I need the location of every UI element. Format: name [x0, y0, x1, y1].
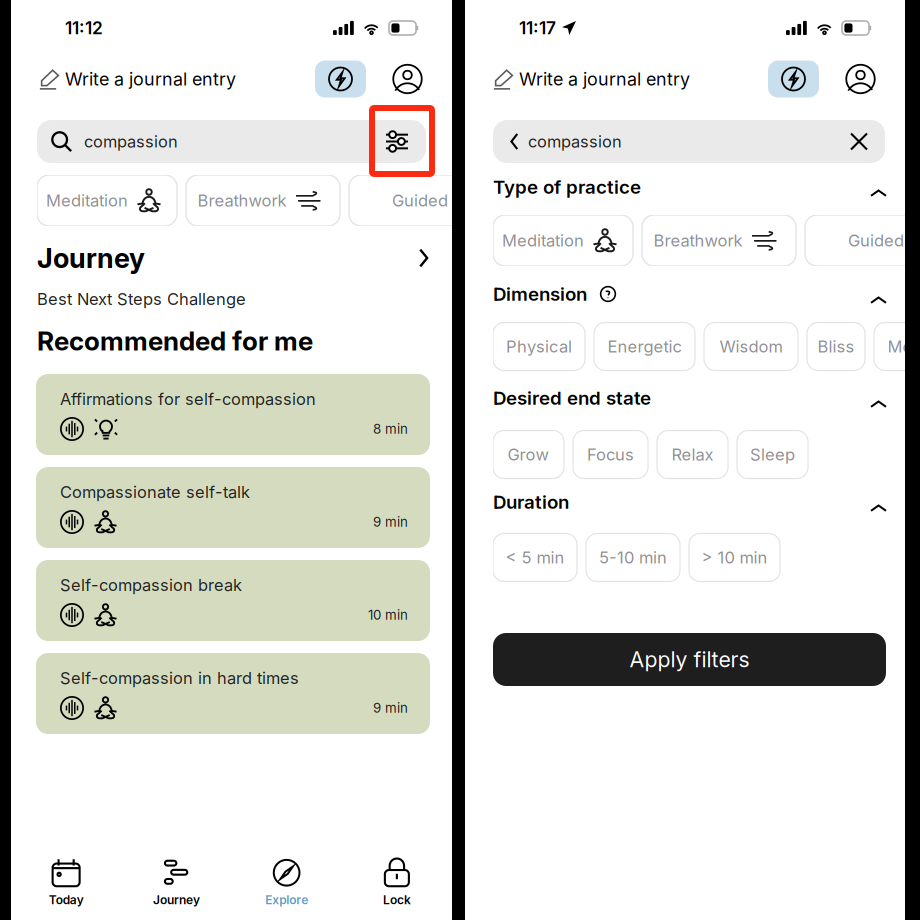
staticText: Apply filters — [629, 647, 749, 672]
staticText: Sleep — [750, 444, 795, 464]
button[interactable]: 5-10 min — [586, 533, 680, 581]
staticText: Grow — [507, 444, 549, 464]
staticText: 9 min — [373, 514, 408, 530]
button[interactable]: Meditation — [37, 175, 177, 226]
button[interactable]: Explore — [231, 859, 342, 907]
button[interactable]: Journey — [121, 859, 231, 907]
staticText: Self-compassion break — [60, 575, 242, 595]
button[interactable]: Collapse Type of practice — [870, 176, 905, 198]
button[interactable]: Grow — [493, 430, 564, 478]
button[interactable]: Back — [493, 132, 528, 150]
staticText: Meditation — [46, 190, 128, 210]
button[interactable]: Lock — [342, 859, 452, 907]
staticText: 8 min — [373, 421, 408, 437]
button[interactable]: Clear search — [851, 133, 885, 149]
button[interactable]: Sleep — [737, 430, 808, 478]
staticText: Self-compassion in hard times — [60, 668, 299, 688]
button[interactable]: Journey — [11, 226, 452, 274]
staticText: Physical — [506, 336, 572, 356]
button[interactable]: Write a journal entry — [11, 68, 236, 90]
button[interactable]: Meditation — [493, 215, 633, 266]
staticText: < 5 min — [505, 547, 564, 567]
staticText: Bliss — [817, 336, 854, 356]
button[interactable]: Wisdom — [704, 322, 798, 370]
button[interactable]: < 5 min — [493, 533, 577, 581]
button[interactable]: Apply filters — [465, 633, 905, 686]
staticText: Duration — [493, 491, 569, 513]
button[interactable]: Focus — [573, 430, 648, 478]
staticText: Today — [49, 893, 84, 907]
button[interactable]: Self-compassion in hard times — [36, 653, 430, 734]
button[interactable]: > 10 min — [689, 533, 780, 581]
staticText: Affirmations for self-compassion — [60, 389, 316, 409]
button[interactable]: Profile — [366, 63, 452, 94]
button[interactable]: Mental — [874, 322, 920, 370]
button[interactable]: Profile — [819, 63, 905, 94]
staticText: Journey — [153, 893, 200, 907]
button[interactable]: Bliss — [807, 322, 865, 370]
button[interactable]: Affirmations for self-compassion — [36, 374, 430, 455]
staticText: Write a journal entry — [519, 68, 690, 90]
button[interactable]: Self-compassion break — [36, 560, 430, 641]
staticText: Compassionate self-talk — [60, 482, 250, 502]
button[interactable]: Compassionate self-talk — [36, 467, 430, 548]
staticText: Wisdom — [719, 336, 782, 356]
staticText: Guided — [848, 230, 904, 250]
staticText: 11:17 — [519, 17, 556, 38]
button[interactable]: Collapse Desired end state — [870, 387, 905, 409]
staticText: 9 min — [373, 700, 408, 716]
staticText: Breathwork — [653, 230, 742, 250]
staticText: Desired end state — [493, 387, 651, 409]
staticText: Focus — [587, 444, 634, 464]
staticText: Meditation — [502, 230, 584, 250]
staticText: 10 min — [368, 607, 408, 623]
staticText: > 10 min — [701, 547, 767, 567]
staticText: Recommended for me — [37, 325, 313, 357]
button[interactable]: Collapse Dimension — [870, 283, 905, 305]
staticText: Best Next Steps Challenge — [37, 289, 246, 309]
staticText: Mental — [887, 336, 920, 356]
staticText: Explore — [265, 893, 308, 907]
button[interactable]: Guided — [805, 215, 920, 266]
staticText: Write a journal entry — [65, 68, 236, 90]
staticText: Energetic — [607, 336, 681, 356]
button[interactable]: Today — [11, 859, 121, 907]
staticText: compassion — [84, 132, 178, 151]
staticText: Relax — [671, 444, 713, 464]
staticText: Lock — [383, 893, 411, 907]
button[interactable]: Energetic — [594, 322, 695, 370]
staticText: 5-10 min — [599, 547, 667, 567]
button[interactable]: Breathwork — [186, 175, 340, 226]
staticText: 11:12 — [65, 17, 103, 38]
staticText: Journey — [37, 241, 145, 274]
button[interactable]: Streak — [768, 60, 819, 97]
staticText: Dimension — [493, 283, 587, 305]
staticText: Type of practice — [493, 176, 641, 198]
button[interactable]: Collapse Duration — [870, 491, 905, 513]
button[interactable]: Streak — [315, 60, 366, 97]
staticText: compassion — [528, 132, 622, 151]
button[interactable]: Physical — [493, 322, 585, 370]
staticText: Guided — [392, 190, 448, 210]
button[interactable]: Guided — [349, 175, 489, 226]
button[interactable]: Breathwork — [642, 215, 796, 266]
staticText: Breathwork — [197, 190, 286, 210]
button[interactable]: Write a journal entry — [465, 68, 690, 90]
button[interactable]: Relax — [657, 430, 728, 478]
